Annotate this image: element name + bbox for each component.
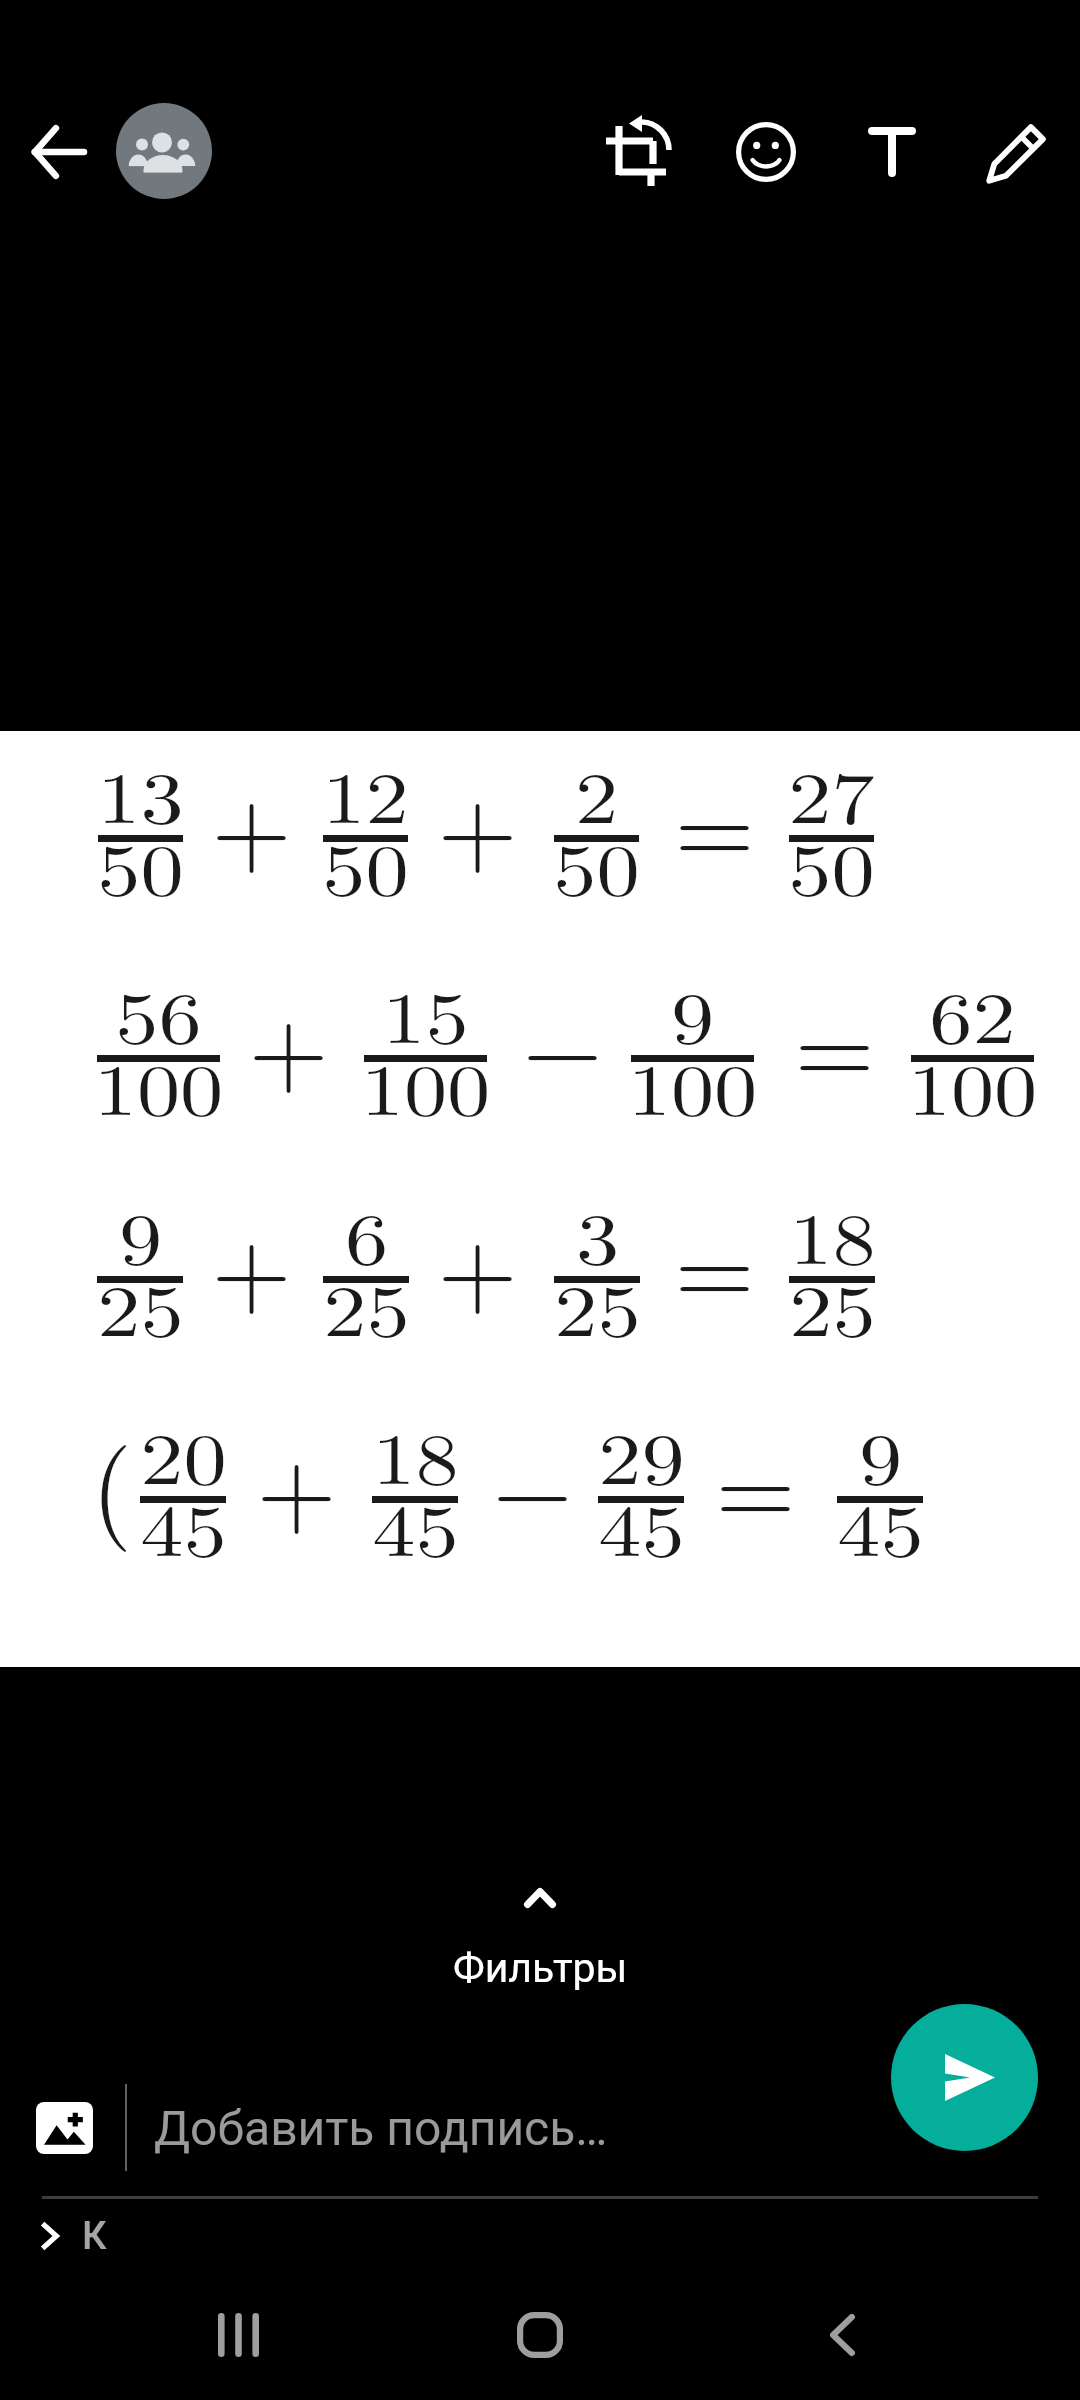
staticText: = (715, 1409, 796, 1555)
staticText: Фильтры (453, 1944, 628, 1992)
button[interactable]: Emoji and stickers (703, 97, 829, 207)
staticText: ( (91, 1406, 133, 1556)
staticText: 45 (598, 1475, 685, 1577)
staticText: 45 (140, 1475, 227, 1577)
staticText: 9 (858, 1403, 903, 1505)
button[interactable]: Add photo (36, 2102, 93, 2154)
staticText: 25 (97, 1255, 184, 1357)
staticText: К (82, 2214, 107, 2259)
staticText: 45 (837, 1475, 924, 1577)
staticText: 20 (140, 1403, 227, 1505)
button[interactable]: Add text (829, 97, 955, 207)
staticText: 2 (574, 742, 619, 844)
staticText: 45 (372, 1475, 459, 1577)
staticText: = (674, 748, 755, 894)
staticText: 13 (97, 742, 184, 844)
staticText: 15 (382, 962, 469, 1064)
staticText: 25 (554, 1255, 641, 1357)
button[interactable]: Recent apps (148, 2290, 328, 2380)
staticText: 50 (553, 814, 640, 916)
staticText: 9 (670, 962, 715, 1064)
staticText: 62 (929, 962, 1016, 1064)
staticText: 27 (788, 742, 875, 844)
button[interactable]: Crop and rotate (577, 97, 703, 207)
button[interactable]: Draw (955, 97, 1080, 207)
staticText: 18 (372, 1403, 459, 1505)
staticText: 25 (323, 1255, 410, 1357)
button[interactable]: Group avatar (116, 103, 212, 199)
staticText: 100 (627, 1034, 758, 1136)
staticText: + (256, 1409, 337, 1555)
staticText: 29 (598, 1403, 685, 1505)
staticText: = (794, 968, 875, 1114)
staticText: 12 (322, 742, 409, 844)
button[interactable]: К (40, 2212, 107, 2260)
staticText: 56 (115, 962, 202, 1064)
button[interactable]: Back (752, 2290, 932, 2380)
staticText: 50 (788, 814, 875, 916)
button[interactable]: Добавить подпись… (154, 2100, 854, 2170)
staticText: + (437, 748, 518, 894)
staticText: = (674, 1189, 755, 1335)
staticText: 100 (360, 1034, 491, 1136)
staticText: + (211, 1189, 292, 1335)
button[interactable]: Фильтры (330, 1870, 750, 2000)
staticText: 3 (575, 1183, 620, 1285)
button[interactable]: Back (14, 108, 102, 196)
staticText: 6 (344, 1183, 389, 1285)
staticText: 18 (789, 1183, 876, 1285)
staticText: 100 (907, 1034, 1038, 1136)
staticText: 25 (789, 1255, 876, 1357)
staticText: − (522, 968, 603, 1114)
staticText: 50 (322, 814, 409, 916)
staticText: 50 (97, 814, 184, 916)
button[interactable]: Send (891, 2004, 1038, 2151)
staticText: + (437, 1189, 518, 1335)
staticText: + (211, 748, 292, 894)
button[interactable]: Home (450, 2290, 630, 2380)
staticText: 9 (118, 1183, 163, 1285)
staticText: − (492, 1409, 573, 1555)
staticText: 100 (93, 1034, 224, 1136)
staticText: + (248, 968, 329, 1114)
staticText: Добавить подпись… (154, 2100, 608, 2156)
